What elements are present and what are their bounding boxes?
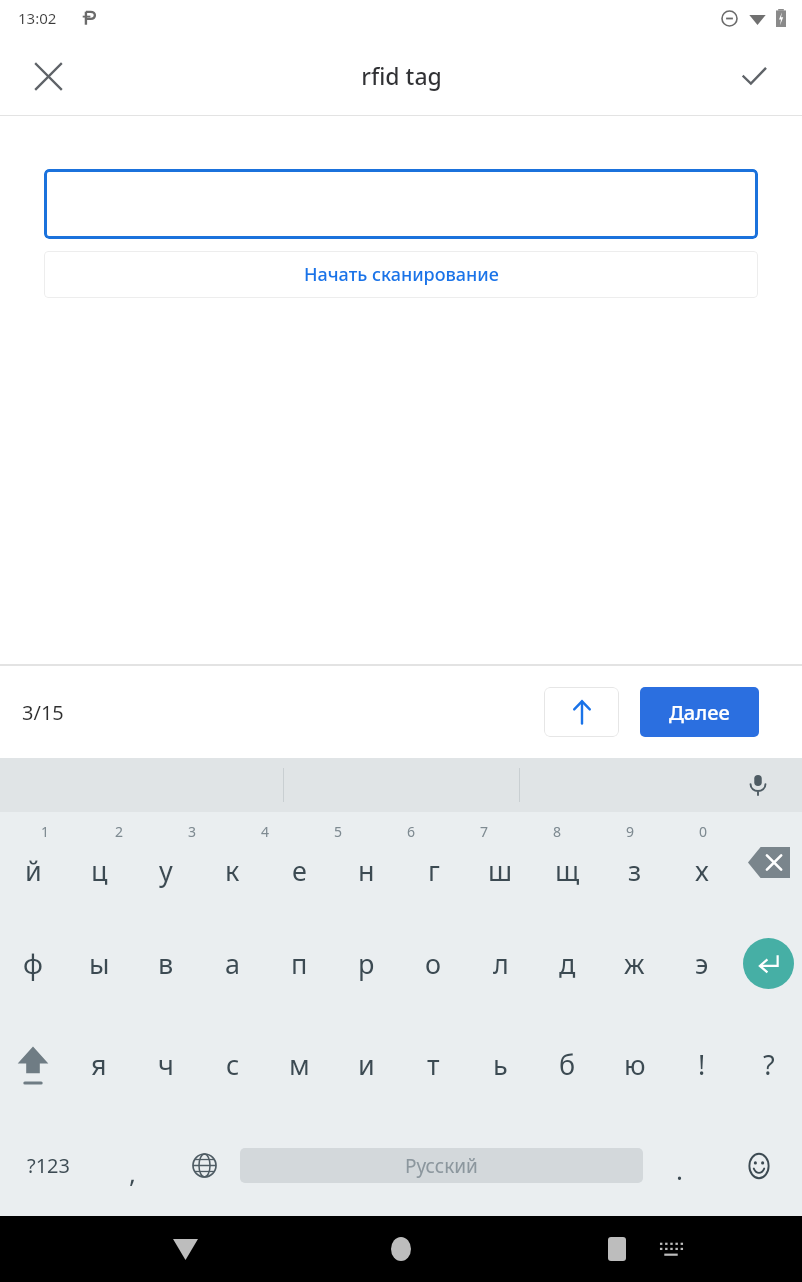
staticText: х — [695, 852, 709, 889]
staticText: э — [695, 945, 709, 982]
staticText: 4 — [261, 822, 270, 841]
button[interactable]: о — [400, 913, 467, 1014]
button[interactable]: а — [199, 913, 266, 1014]
staticText: 0 — [699, 822, 708, 841]
button[interactable]: . — [643, 1115, 715, 1216]
button[interactable]: Back — [161, 1225, 209, 1273]
button[interactable]: н — [333, 812, 400, 913]
staticText: ? — [763, 1046, 775, 1083]
staticText: 13:02 — [18, 8, 57, 28]
button[interactable]: Emoji — [715, 1115, 802, 1216]
button[interactable]: п — [266, 913, 333, 1014]
button[interactable]: Далее — [640, 687, 759, 737]
staticText: я — [91, 1046, 107, 1083]
button[interactable]: Voice input — [738, 765, 778, 805]
button[interactable]: ! — [668, 1014, 735, 1115]
staticText: к — [225, 852, 240, 889]
button[interactable]: ?123 — [0, 1115, 96, 1216]
staticText: ?123 — [27, 1152, 70, 1179]
staticText: 2 — [115, 822, 124, 841]
button[interactable]: з — [601, 812, 668, 913]
staticText: ю — [624, 1046, 646, 1083]
staticText: 1 — [41, 822, 50, 841]
button[interactable]: с — [199, 1014, 266, 1115]
button[interactable]: у — [132, 812, 199, 913]
button[interactable]: ж — [601, 913, 668, 1014]
button[interactable]: л — [467, 913, 534, 1014]
button[interactable]: ь — [467, 1014, 534, 1115]
staticText: ь — [493, 1046, 508, 1083]
staticText: Далее — [669, 699, 730, 726]
staticText: м — [289, 1046, 310, 1083]
staticText: 8 — [553, 822, 562, 841]
staticText: 9 — [626, 822, 635, 841]
button[interactable]: х — [668, 812, 735, 913]
staticText: а — [225, 945, 241, 982]
staticText: 6 — [407, 822, 416, 841]
button[interactable]: ю — [601, 1014, 668, 1115]
button[interactable]: ц — [66, 812, 132, 913]
staticText: ф — [23, 945, 43, 982]
staticText: с — [226, 1046, 240, 1083]
staticText: rfid tag — [361, 60, 442, 91]
staticText: н — [358, 852, 375, 889]
staticText: з — [628, 852, 642, 889]
staticText: в — [158, 945, 174, 982]
button[interactable]: в — [132, 913, 199, 1014]
staticText: п — [291, 945, 308, 982]
button[interactable]: щ — [534, 812, 601, 913]
staticText: б — [559, 1046, 576, 1083]
staticText: 3/15 — [22, 699, 64, 726]
button[interactable]: т — [400, 1014, 467, 1115]
staticText: , — [129, 1155, 136, 1190]
button[interactable]: ы — [66, 913, 132, 1014]
staticText: ! — [698, 1046, 706, 1083]
button[interactable]: Enter — [735, 913, 802, 1014]
staticText: о — [425, 945, 442, 982]
staticText: ч — [158, 1046, 174, 1083]
staticText: 7 — [480, 822, 489, 841]
button[interactable]: ч — [132, 1014, 199, 1115]
staticText: т — [427, 1046, 440, 1083]
button[interactable]: е — [266, 812, 333, 913]
button[interactable]: м — [266, 1014, 333, 1115]
button[interactable]: , — [96, 1115, 168, 1216]
button[interactable]: Close — [24, 52, 72, 100]
button[interactable]: б — [534, 1014, 601, 1115]
staticText: щ — [555, 852, 580, 889]
button[interactable] — [44, 169, 758, 239]
button[interactable]: г — [400, 812, 467, 913]
button[interactable]: й — [0, 812, 66, 913]
staticText: р — [358, 945, 375, 982]
button[interactable]: Previous — [544, 687, 619, 737]
button[interactable]: ? — [735, 1014, 802, 1115]
staticText: и — [358, 1046, 375, 1083]
staticText: е — [292, 852, 307, 889]
staticText: 3 — [188, 822, 197, 841]
button[interactable]: Shift — [0, 1014, 66, 1115]
staticText: 5 — [334, 822, 343, 841]
button[interactable]: к — [199, 812, 266, 913]
button[interactable]: я — [66, 1014, 132, 1115]
button[interactable]: д — [534, 913, 601, 1014]
button[interactable]: Switch keyboard — [650, 1228, 692, 1270]
button[interactable]: Save — [730, 52, 778, 100]
staticText: д — [559, 945, 576, 982]
staticText: ш — [488, 852, 513, 889]
button[interactable]: и — [333, 1014, 400, 1115]
staticText: Начать сканирование — [304, 262, 499, 287]
staticText: г — [428, 852, 440, 889]
button[interactable]: Русский — [240, 1148, 643, 1183]
button[interactable]: Backspace — [735, 812, 802, 913]
button[interactable]: р — [333, 913, 400, 1014]
staticText: Русский — [405, 1153, 478, 1179]
staticText: ц — [91, 852, 108, 889]
staticText: . — [676, 1152, 683, 1187]
button[interactable]: э — [668, 913, 735, 1014]
button[interactable]: Начать сканирование — [44, 251, 758, 298]
button[interactable]: ш — [467, 812, 534, 913]
button[interactable]: Recent apps — [593, 1225, 641, 1273]
button[interactable]: Home — [377, 1225, 425, 1273]
button[interactable]: Change language — [168, 1115, 240, 1216]
button[interactable]: ф — [0, 913, 66, 1014]
